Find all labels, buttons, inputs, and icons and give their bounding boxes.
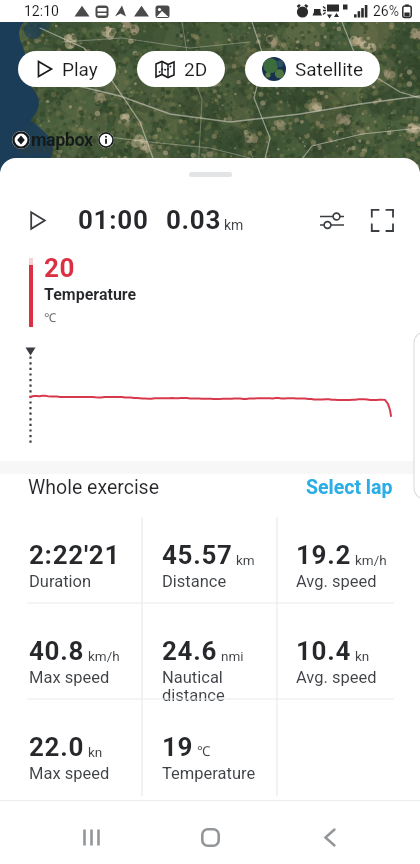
staticText: 20 xyxy=(44,253,76,283)
staticText: 19 xyxy=(162,732,194,762)
button[interactable]: 19.2 xyxy=(277,516,420,612)
staticText: 40.8 xyxy=(29,636,85,666)
staticText: Max speed xyxy=(29,764,110,783)
button[interactable]: Satellite xyxy=(245,51,380,87)
button[interactable]: Play xyxy=(22,204,54,236)
staticText: Avg. speed xyxy=(296,668,377,687)
button[interactable]: Select lap xyxy=(306,476,393,499)
staticText: Temperature xyxy=(162,764,256,783)
staticText: nmi xyxy=(221,648,244,664)
staticText: kn xyxy=(355,648,370,664)
staticText: 0.03 xyxy=(166,205,222,235)
staticText: 45.57 xyxy=(162,540,233,570)
staticText: Avg. speed xyxy=(296,572,377,591)
staticText: km/h xyxy=(355,552,387,568)
button[interactable]: 2:22'21 xyxy=(0,516,142,612)
staticText: km/h xyxy=(88,648,120,664)
staticText: 01:00 xyxy=(78,205,149,235)
button[interactable]: Home xyxy=(181,808,239,864)
staticText: 26% xyxy=(373,3,399,19)
staticText: Distance xyxy=(162,572,227,591)
staticText: ℃ xyxy=(44,309,56,325)
staticText: 2:22'21 xyxy=(29,540,120,570)
staticText: 24.6 xyxy=(162,636,218,666)
button[interactable]: 2D xyxy=(137,51,225,87)
staticText: Whole exercise xyxy=(28,476,160,499)
button[interactable]: Recent apps xyxy=(62,808,120,864)
staticText: mapbox xyxy=(31,129,93,150)
staticText: Rovinj xyxy=(16,140,54,156)
button[interactable]: 19 xyxy=(142,708,277,792)
button[interactable]: Play xyxy=(18,51,116,87)
staticText: Max speed xyxy=(29,668,110,687)
staticText: 10.4 xyxy=(296,636,352,666)
staticText: 2D xyxy=(184,58,208,80)
staticText: Play xyxy=(62,58,98,80)
staticText: km xyxy=(224,217,244,233)
staticText: Duration xyxy=(29,572,92,591)
button[interactable]: Back xyxy=(301,808,359,864)
staticText: 22.0 xyxy=(29,732,85,762)
button[interactable]: Full screen xyxy=(366,204,398,236)
button[interactable]: Settings xyxy=(316,204,348,236)
staticText: 12:10 xyxy=(24,3,59,19)
button[interactable]: 24.6 xyxy=(142,612,277,708)
staticText: kn xyxy=(88,744,103,760)
staticText: km xyxy=(236,552,255,568)
staticText: 19.2 xyxy=(296,540,352,570)
staticText: Satellite xyxy=(295,58,364,80)
staticText: Temperature xyxy=(44,285,137,304)
staticText: Nautical distance xyxy=(162,668,225,705)
button[interactable]: 45.57 xyxy=(142,516,277,612)
button[interactable]: 40.8 xyxy=(0,612,142,708)
staticText: ℃ xyxy=(197,742,211,760)
button[interactable]: 22.0 xyxy=(0,708,142,792)
staticText: Select lap xyxy=(306,476,393,499)
button[interactable]: 10.4 xyxy=(277,612,420,708)
